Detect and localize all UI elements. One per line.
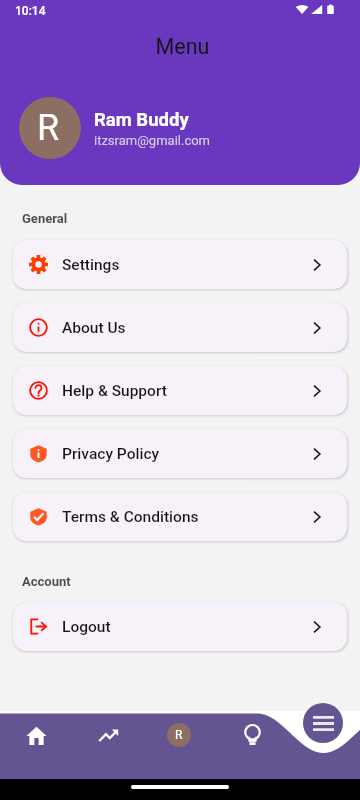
button[interactable]: Privacy Policy [13, 429, 347, 478]
staticText: Account [22, 574, 71, 589]
button[interactable]: Home [17, 716, 55, 754]
button[interactable]: Logout [13, 602, 347, 651]
staticText: Privacy Policy [62, 445, 160, 463]
staticText: General [22, 211, 68, 226]
staticText: R [37, 107, 60, 149]
button[interactable]: Profile [160, 716, 198, 754]
button[interactable]: Settings [13, 240, 347, 289]
staticText: Help & Support [62, 382, 167, 400]
staticText: Ram Buddy [94, 109, 189, 131]
button[interactable]: Terms & Conditions [13, 492, 347, 541]
button[interactable]: Open menu [303, 703, 343, 743]
button[interactable]: Help & Support [13, 366, 347, 415]
button[interactable]: Tips [233, 716, 271, 754]
staticText: R [175, 728, 183, 742]
staticText: Terms & Conditions [62, 508, 199, 526]
staticText: Menu [5, 34, 360, 59]
staticText: 10:14 [15, 4, 46, 18]
staticText: About Us [62, 319, 126, 337]
staticText: itzsram@gmail.com [94, 133, 211, 148]
button[interactable]: Analytics [89, 716, 127, 754]
staticText: Settings [62, 256, 120, 274]
staticText: Logout [62, 618, 111, 636]
button[interactable]: About Us [13, 303, 347, 352]
